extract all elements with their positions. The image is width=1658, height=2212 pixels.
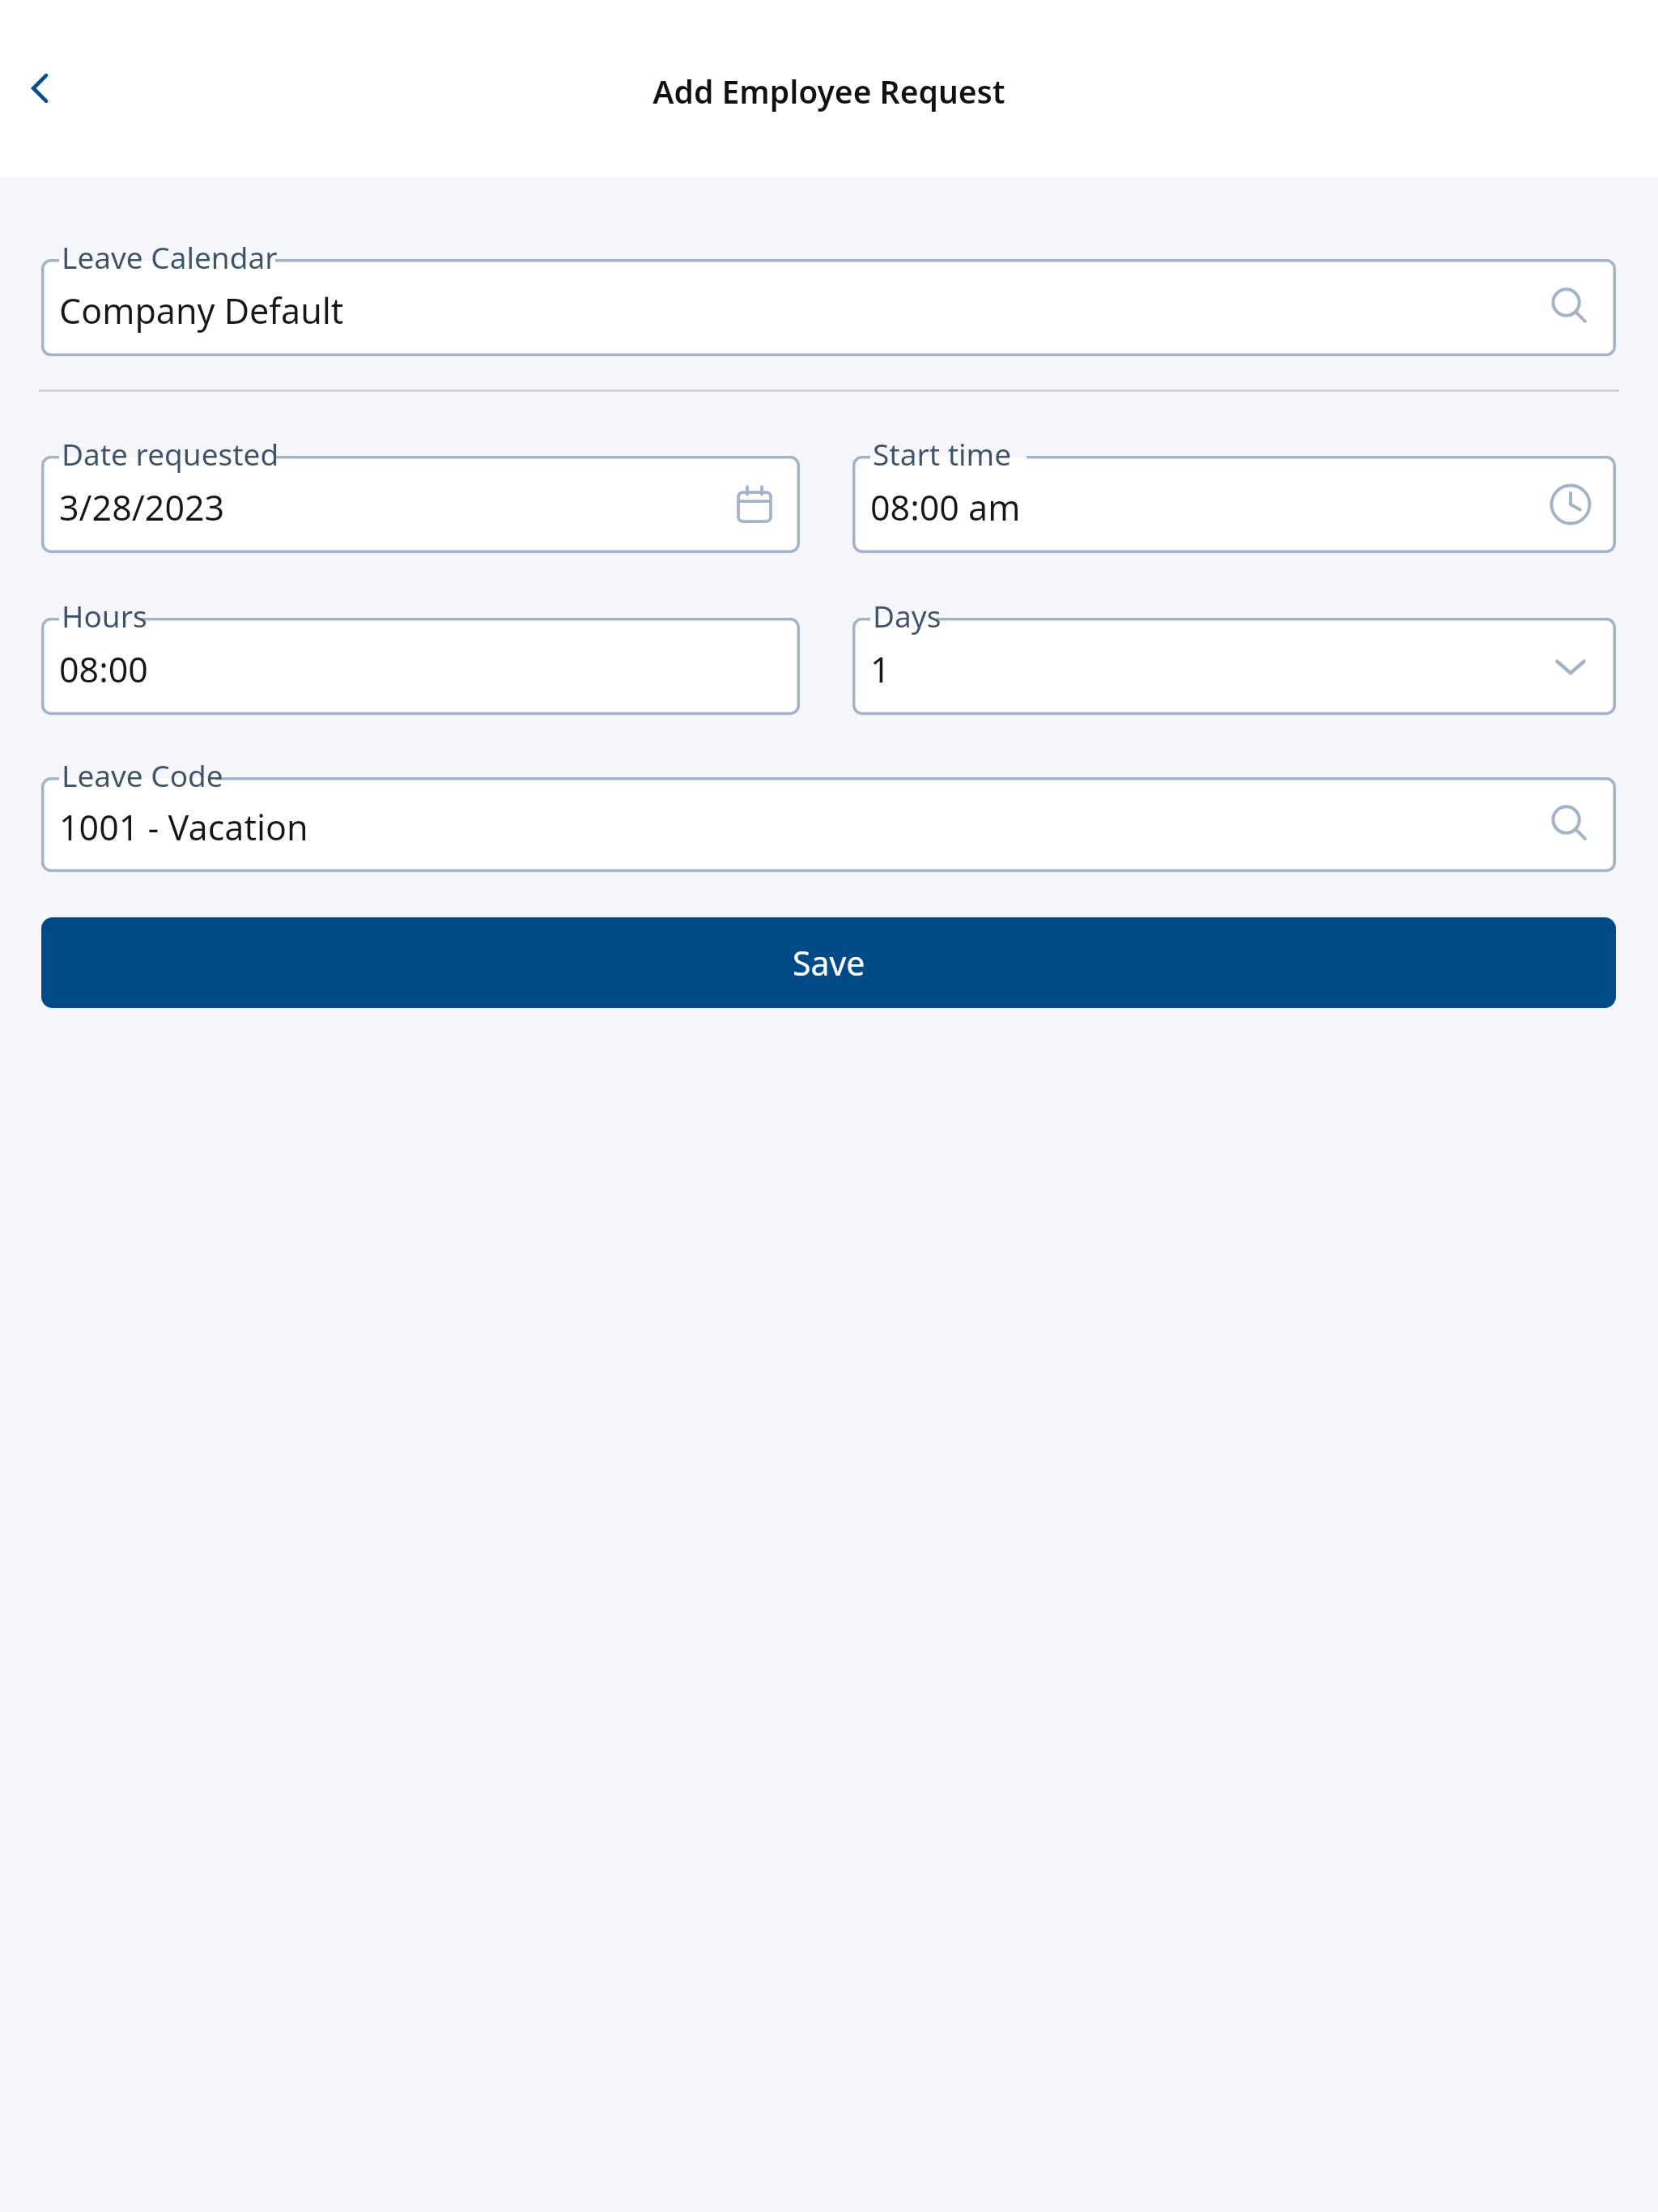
staticText: Add Employee Request [653,70,1005,113]
staticText: 1 [870,645,891,693]
staticText: Leave Code [62,755,223,795]
button[interactable]: Pick date [722,472,787,537]
button[interactable]: Open list [1538,634,1603,699]
button[interactable]: Search [1538,275,1603,340]
staticText: Hours [62,595,147,636]
staticText: 1001 - Vacation [59,803,308,851]
staticText: Days [873,595,942,636]
button[interactable]: Back [8,56,73,121]
staticText: Save [793,940,865,985]
staticText: 08:00 [59,645,148,693]
button[interactable]: Save [41,917,1616,1008]
staticText: 3/28/2023 [59,483,225,531]
staticText: Company Default [59,287,344,334]
staticText: Leave Calendar [62,236,278,277]
staticText: 08:00 am [870,483,1021,531]
staticText: Start time [873,433,1012,474]
staticText: Date requested [62,433,279,474]
button[interactable]: Pick time [1538,472,1603,537]
button[interactable]: Search [1538,793,1603,857]
